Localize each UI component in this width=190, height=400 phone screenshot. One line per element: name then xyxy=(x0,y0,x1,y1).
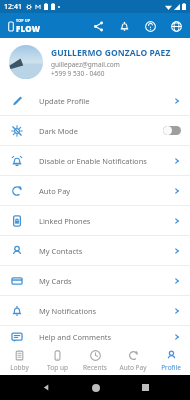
staticText: Auto Pay xyxy=(119,363,147,372)
staticText: Lobby xyxy=(10,363,29,372)
staticText: GUILLERMO GONZALO PAEZ xyxy=(51,47,171,59)
staticText: 12:41 xyxy=(4,2,22,12)
button[interactable]: My Contacts xyxy=(0,236,190,265)
button[interactable]: Disable or Enable Notifications xyxy=(0,146,190,175)
button[interactable]: Language xyxy=(168,18,184,34)
staticText: FLOW xyxy=(16,23,41,34)
button[interactable]: Auto Pay xyxy=(114,347,152,375)
other: Home xyxy=(92,384,100,392)
button[interactable]: Update Profile xyxy=(0,86,190,115)
staticText: Auto Pay xyxy=(39,186,173,196)
staticText: Recents xyxy=(83,363,107,372)
button[interactable]: Linked Phones xyxy=(0,206,190,235)
staticText: Dark Mode xyxy=(39,126,163,136)
button[interactable]: Notifications xyxy=(116,18,132,34)
staticText: Top up xyxy=(47,363,68,372)
staticText: +599 9 530 - 0460 xyxy=(51,69,105,78)
staticText: My Cards xyxy=(39,276,173,286)
button[interactable]: Help xyxy=(142,18,158,34)
staticText: TOP UP xyxy=(16,18,31,23)
button[interactable]: Help and Comments xyxy=(0,326,190,347)
button[interactable]: Auto Pay xyxy=(0,176,190,205)
staticText: Profile xyxy=(161,363,181,372)
button[interactable]: Dark Mode xyxy=(0,116,190,145)
staticText: guillepaez@gmail.com xyxy=(51,60,120,69)
staticText: Linked Phones xyxy=(39,216,173,226)
button[interactable]: My Notifications xyxy=(0,296,190,325)
other: Back xyxy=(42,383,51,392)
button[interactable]: Profile xyxy=(152,347,190,375)
button[interactable]: Recents xyxy=(76,347,114,375)
staticText: My Contacts xyxy=(39,246,173,256)
button[interactable]: GUILLERMO GONZALO PAEZ xyxy=(0,38,190,86)
other: Dark Mode toggle xyxy=(163,126,181,135)
button[interactable]: Top up xyxy=(38,347,76,375)
button[interactable]: Lobby xyxy=(0,347,38,375)
button[interactable]: Share xyxy=(90,18,106,34)
staticText: Update Profile xyxy=(39,96,173,106)
staticText: My Notifications xyxy=(39,306,173,316)
staticText: Help and Comments xyxy=(39,332,173,342)
button[interactable]: My Cards xyxy=(0,266,190,295)
staticText: Disable or Enable Notifications xyxy=(39,156,173,166)
